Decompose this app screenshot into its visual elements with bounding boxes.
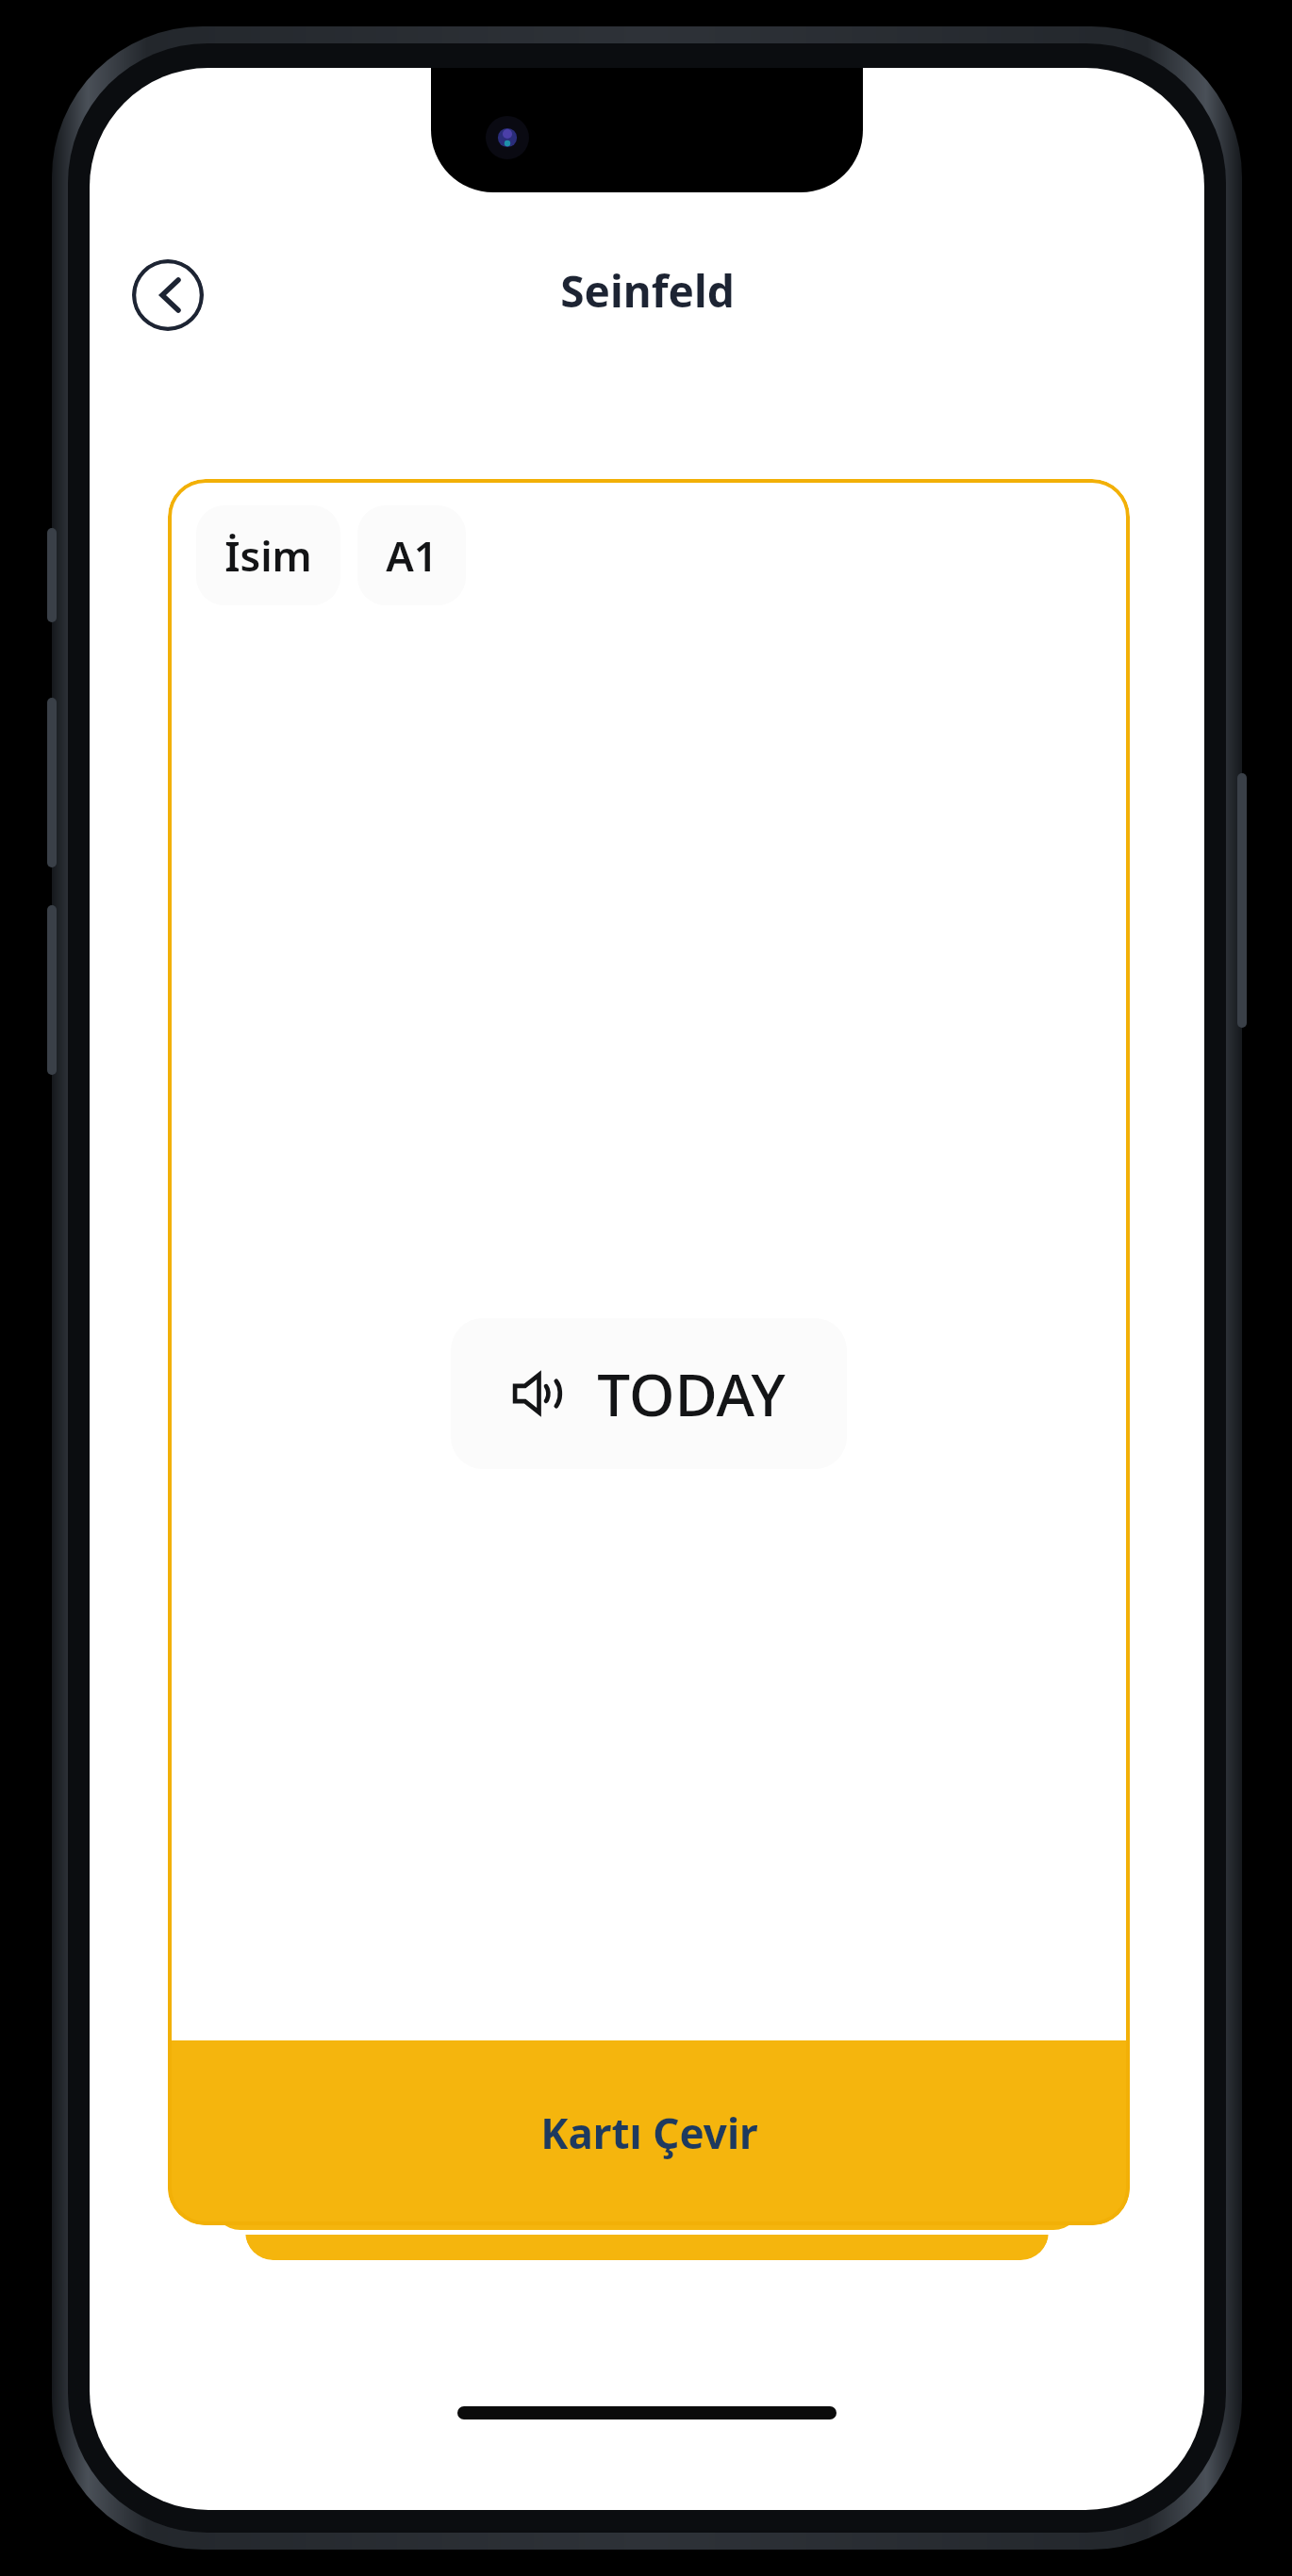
button[interactable]: İsim bbox=[196, 505, 340, 605]
button[interactable]: İsim bbox=[168, 479, 1130, 2225]
button[interactable]: Kartı Çevir bbox=[168, 2040, 1130, 2225]
button[interactable]: TODAY bbox=[451, 1318, 847, 1469]
staticText: İsim bbox=[224, 527, 312, 584]
staticText: Seinfeld bbox=[560, 261, 735, 321]
staticText: A1 bbox=[386, 527, 438, 584]
staticText: Kartı Çevir bbox=[540, 2105, 758, 2161]
button[interactable]: A1 bbox=[357, 505, 466, 605]
staticText: TODAY bbox=[597, 1354, 786, 1433]
button[interactable]: Back bbox=[132, 259, 204, 331]
